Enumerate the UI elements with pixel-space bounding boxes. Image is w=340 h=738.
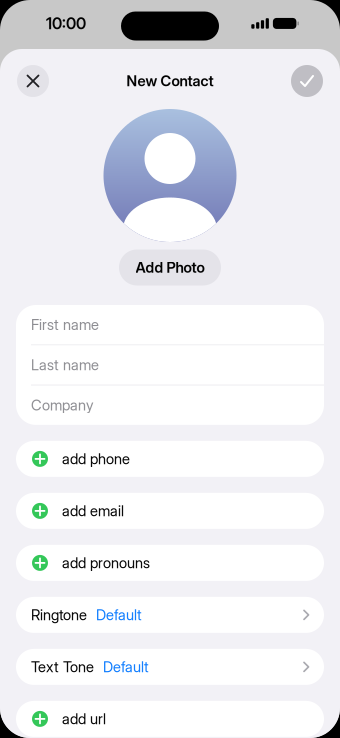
staticText: Default [96, 606, 142, 623]
staticText: New Contact [126, 72, 213, 90]
button[interactable]: Done [291, 65, 323, 97]
staticText: add pronouns [62, 554, 150, 571]
staticText: First name [31, 316, 99, 333]
button[interactable]: add email [16, 493, 324, 529]
button[interactable]: Last name [16, 345, 324, 385]
staticText: Ringtone [31, 606, 87, 623]
staticText: Last name [31, 356, 99, 374]
button[interactable]: Company [16, 385, 324, 425]
staticText: add phone [62, 450, 130, 467]
button[interactable]: Ringtone [16, 597, 324, 633]
button[interactable]: Add Photo [119, 249, 221, 285]
staticText: Default [103, 658, 149, 675]
button[interactable]: add url [16, 701, 324, 737]
staticText: add email [62, 502, 124, 519]
button[interactable]: add phone [16, 441, 324, 477]
button[interactable]: First name [16, 305, 324, 344]
staticText: Text Tone [31, 658, 94, 675]
button[interactable]: Text Tone [16, 649, 324, 685]
staticText: 10:00 [46, 14, 86, 33]
staticText: add url [62, 710, 106, 727]
staticText: Add Photo [135, 259, 204, 276]
staticText: Company [31, 396, 94, 414]
button[interactable]: Cancel [17, 65, 49, 97]
button[interactable]: add pronouns [16, 545, 324, 581]
